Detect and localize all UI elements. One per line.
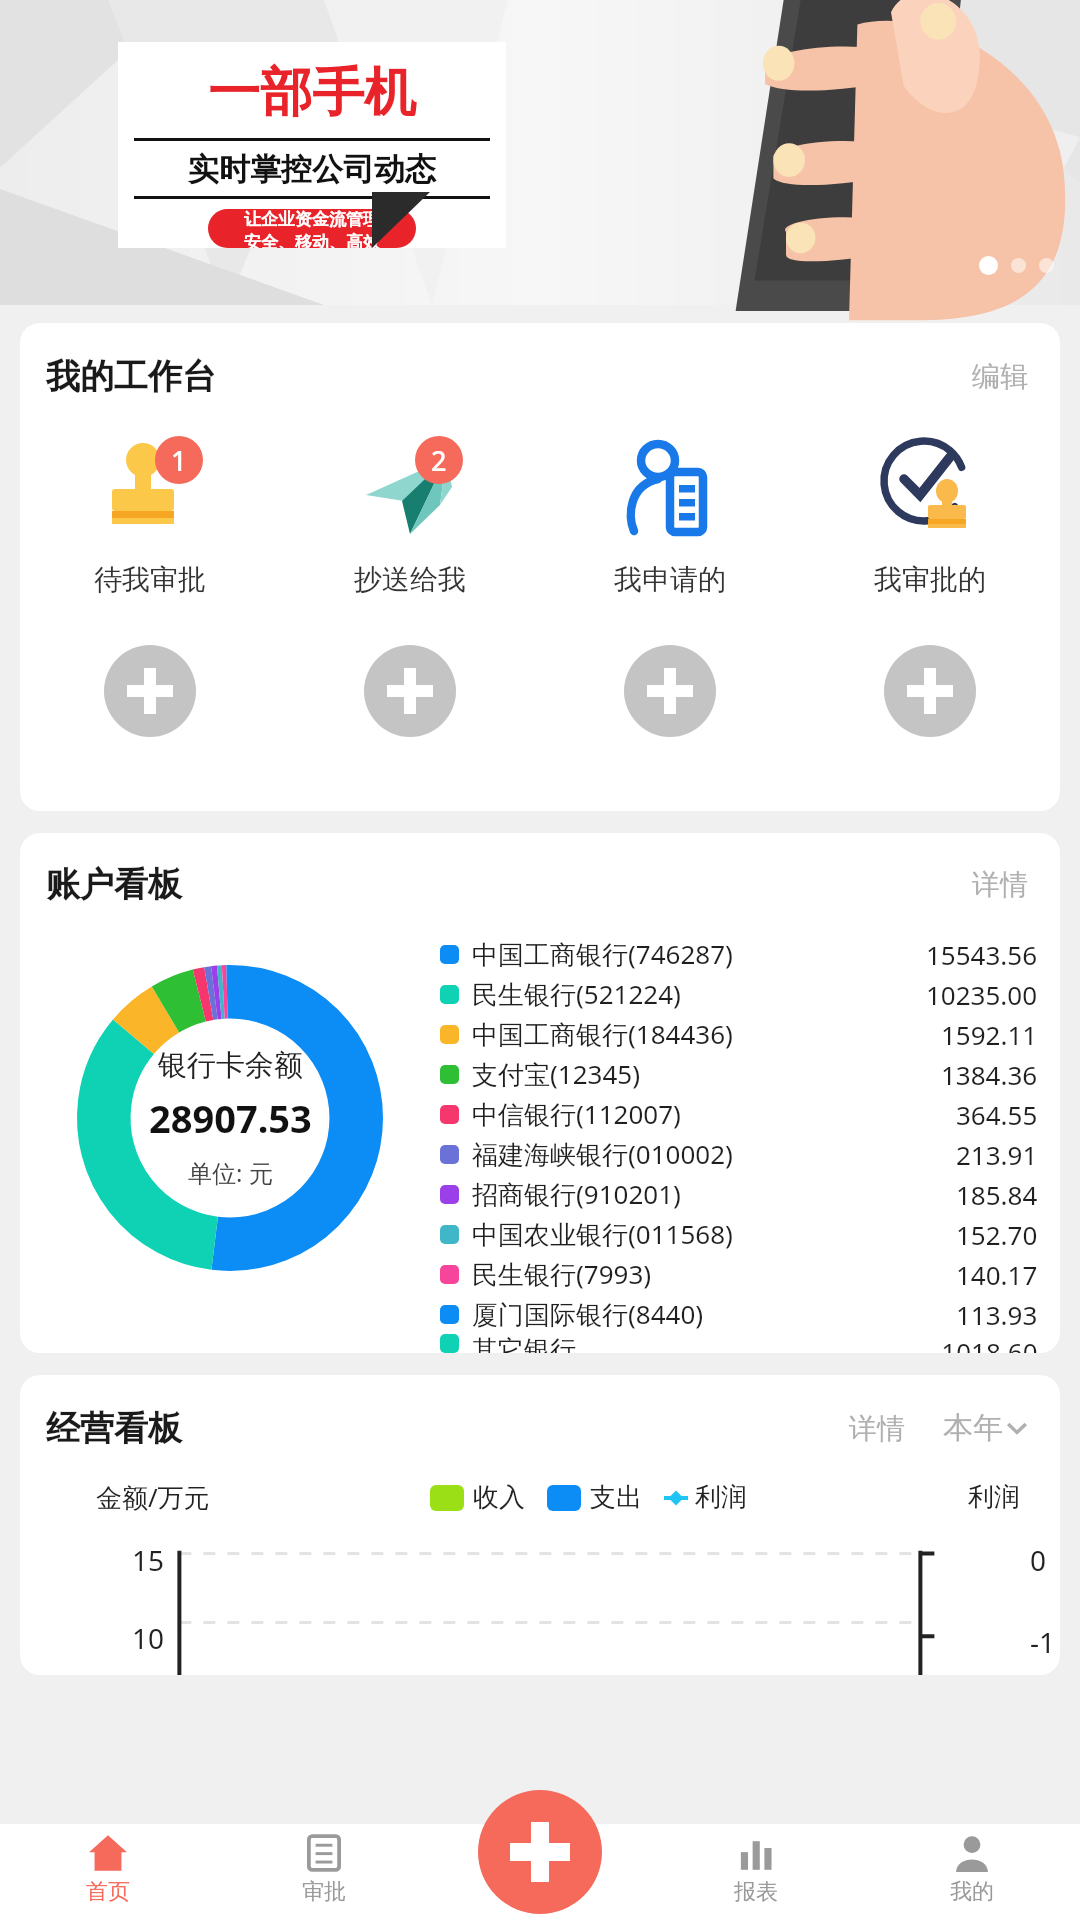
staticText: 利润 bbox=[695, 1481, 747, 1514]
button[interactable]: 招商银行(910201) bbox=[440, 1174, 1038, 1214]
button[interactable]: 我审批的 bbox=[800, 434, 1060, 597]
staticText: 10 bbox=[132, 1619, 165, 1657]
staticText: 让企业资金流管理 bbox=[244, 209, 380, 230]
staticText: 本年 bbox=[943, 1409, 1003, 1447]
staticText: 2 bbox=[431, 442, 447, 479]
button[interactable]: 我申请的 bbox=[540, 434, 800, 597]
button[interactable]: 中国工商银行(746287) bbox=[440, 934, 1038, 974]
staticText: 报表 bbox=[734, 1878, 778, 1906]
button[interactable]: Add shortcut bbox=[20, 645, 280, 737]
staticText: 28907.53 bbox=[149, 1092, 312, 1144]
staticText: 113.93 bbox=[956, 1297, 1038, 1332]
button[interactable]: 福建海峡银行(010002) bbox=[440, 1134, 1038, 1174]
staticText: 账户看板 bbox=[46, 863, 182, 906]
staticText: -1 bbox=[1030, 1623, 1056, 1661]
staticText: 中信银行(112007) bbox=[472, 1096, 681, 1132]
staticText: 10235.00 bbox=[926, 977, 1038, 1012]
button[interactable]: Add bbox=[478, 1790, 602, 1914]
staticText: 待我审批 bbox=[94, 562, 206, 597]
button[interactable]: 中国工商银行(184436) bbox=[440, 1014, 1038, 1054]
staticText: 民生银行(521224) bbox=[472, 976, 681, 1012]
button[interactable]: 详情 bbox=[843, 1405, 911, 1452]
staticText: 厦门国际银行(8440) bbox=[472, 1296, 704, 1332]
button[interactable]: Banner bbox=[0, 0, 1080, 305]
staticText: 经营看板 bbox=[46, 1407, 182, 1450]
staticText: 一部手机 bbox=[208, 60, 416, 126]
staticText: 1384.36 bbox=[941, 1057, 1038, 1092]
staticText: 支出 bbox=[590, 1481, 642, 1514]
staticText: 详情 bbox=[972, 867, 1028, 902]
button[interactable]: Add shortcut bbox=[800, 645, 1060, 737]
staticText: 140.17 bbox=[956, 1257, 1038, 1292]
staticText: 我的工作台 bbox=[46, 355, 216, 398]
staticText: 审批 bbox=[302, 1878, 346, 1906]
staticText: 0 bbox=[1030, 1541, 1047, 1579]
button[interactable]: 民生银行(7993) bbox=[440, 1254, 1038, 1294]
button[interactable]: 首页 bbox=[0, 1824, 216, 1920]
staticText: -1018.60 bbox=[933, 1334, 1038, 1353]
staticText: 安全、移动、高效 bbox=[244, 232, 380, 248]
staticText: 15 bbox=[132, 1541, 165, 1579]
button[interactable]: 民生银行(521224) bbox=[440, 974, 1038, 1014]
staticText: 其它银行 bbox=[472, 1334, 576, 1353]
staticText: 编辑 bbox=[972, 359, 1028, 394]
staticText: 福建海峡银行(010002) bbox=[472, 1136, 733, 1172]
button[interactable]: 其它银行 bbox=[440, 1334, 1038, 1353]
staticText: 213.91 bbox=[956, 1137, 1038, 1172]
button[interactable]: 1 bbox=[20, 434, 280, 597]
button[interactable]: 审批 bbox=[216, 1824, 432, 1920]
staticText: 民生银行(7993) bbox=[472, 1256, 652, 1292]
staticText: 364.55 bbox=[956, 1097, 1038, 1132]
staticText: 152.70 bbox=[956, 1217, 1038, 1252]
button[interactable]: Add shortcut bbox=[280, 645, 540, 737]
staticText: 银行卡余额 bbox=[158, 1047, 303, 1084]
staticText: 15543.56 bbox=[926, 937, 1038, 972]
staticText: 利润 bbox=[968, 1481, 1020, 1514]
staticText: 首页 bbox=[86, 1878, 130, 1906]
staticText: 单位: 元 bbox=[188, 1156, 273, 1189]
staticText: 详情 bbox=[849, 1411, 905, 1446]
staticText: 我的 bbox=[950, 1878, 994, 1906]
staticText: 实时掌控公司动态 bbox=[188, 150, 436, 189]
button[interactable]: 详情 bbox=[966, 861, 1034, 908]
staticText: 1 bbox=[171, 442, 187, 479]
button[interactable]: 编辑 bbox=[966, 353, 1034, 400]
staticText: 185.84 bbox=[956, 1177, 1038, 1212]
staticText: 抄送给我 bbox=[354, 562, 466, 597]
staticText: 招商银行(910201) bbox=[472, 1176, 681, 1212]
button[interactable]: 本年 bbox=[937, 1403, 1034, 1453]
button[interactable]: Add shortcut bbox=[540, 645, 800, 737]
button[interactable]: 中信银行(112007) bbox=[440, 1094, 1038, 1134]
staticText: 中国工商银行(746287) bbox=[472, 936, 733, 972]
button[interactable]: 支付宝(12345) bbox=[440, 1054, 1038, 1094]
button[interactable]: 中国农业银行(011568) bbox=[440, 1214, 1038, 1254]
staticText: 1592.11 bbox=[941, 1017, 1038, 1052]
staticText: 金额/万元 bbox=[96, 1479, 210, 1515]
button[interactable]: 2 bbox=[280, 434, 540, 597]
staticText: 中国工商银行(184436) bbox=[472, 1016, 733, 1052]
staticText: 中国农业银行(011568) bbox=[472, 1216, 733, 1252]
button[interactable]: 厦门国际银行(8440) bbox=[440, 1294, 1038, 1334]
button[interactable]: 报表 bbox=[648, 1824, 864, 1920]
staticText: 我申请的 bbox=[614, 562, 726, 597]
staticText: 收入 bbox=[473, 1481, 525, 1514]
staticText: 支付宝(12345) bbox=[472, 1056, 640, 1092]
staticText: 我审批的 bbox=[874, 562, 986, 597]
button[interactable]: 我的 bbox=[864, 1824, 1080, 1920]
